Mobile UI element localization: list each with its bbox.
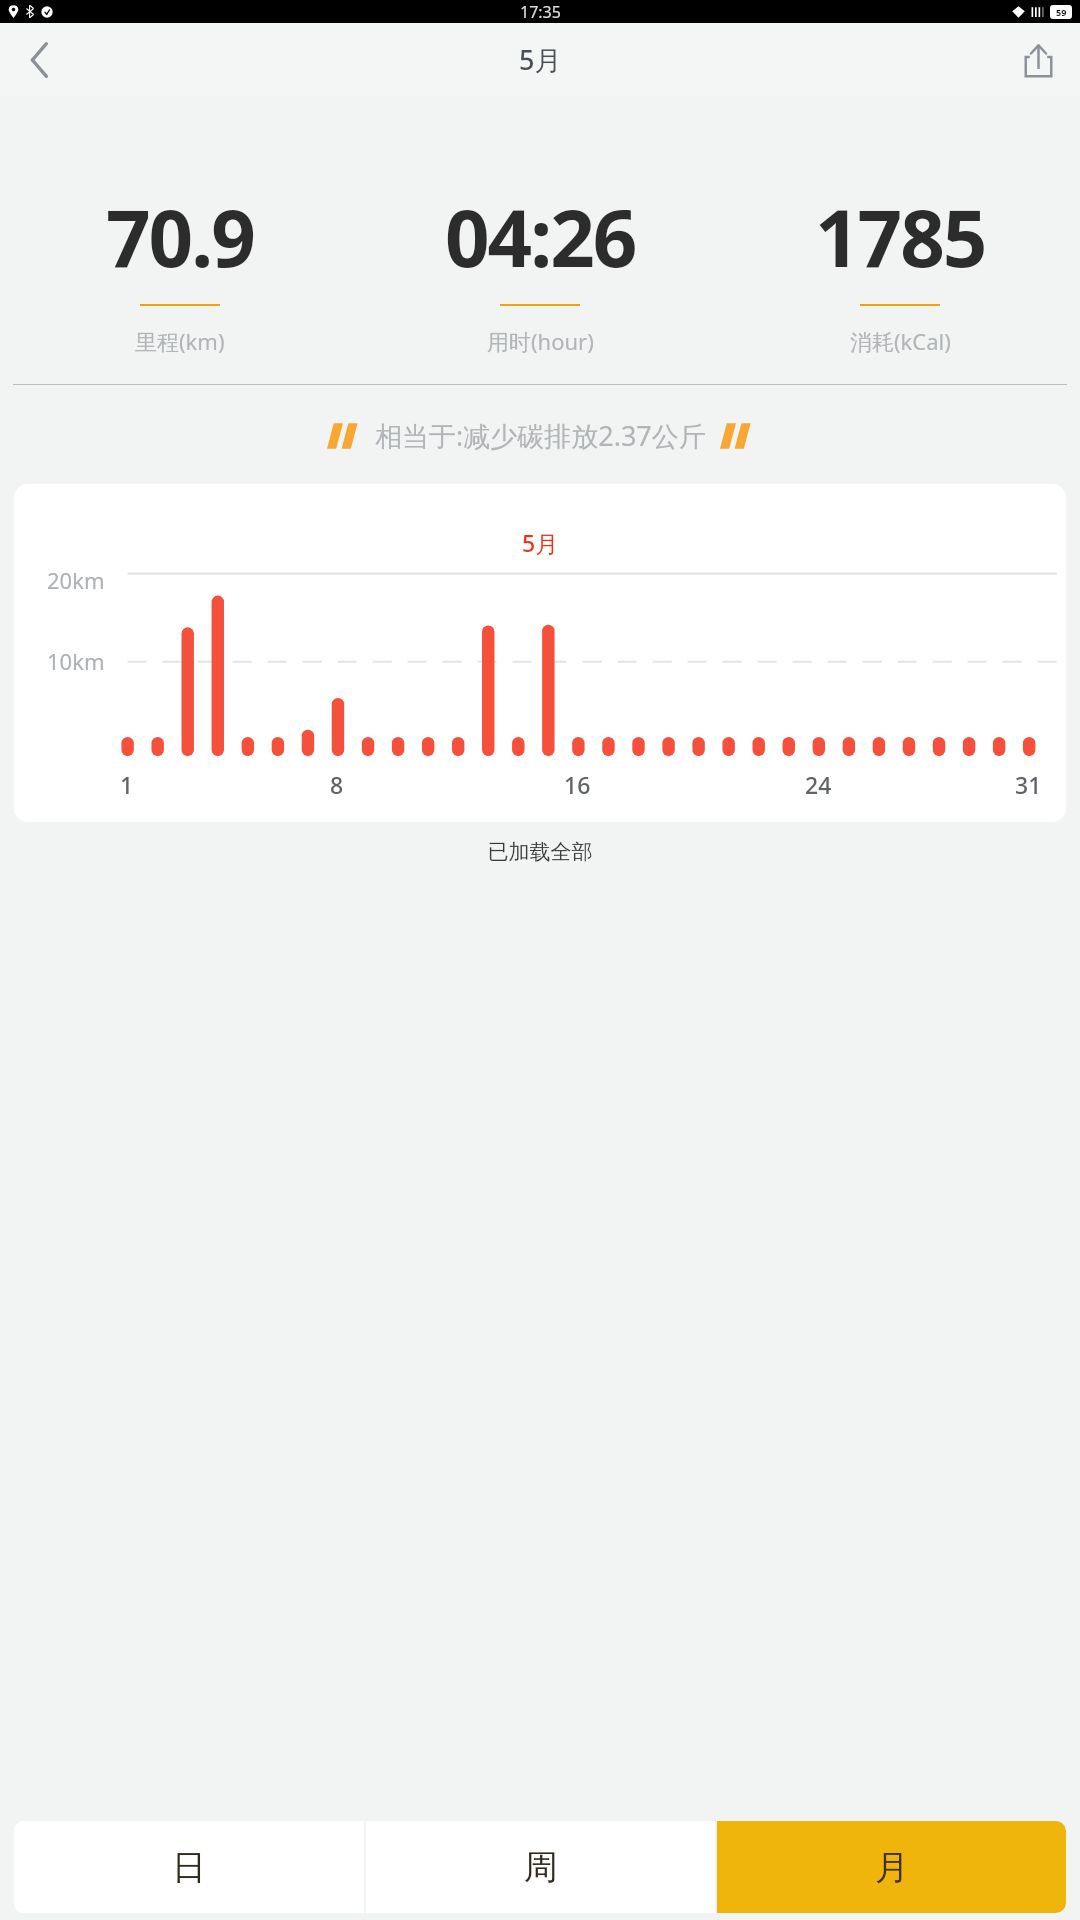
button[interactable]: Share <box>1010 32 1066 88</box>
staticText: 5月 <box>519 41 562 78</box>
button[interactable]: Back <box>12 32 68 88</box>
staticText: 10km <box>47 646 105 676</box>
staticText: 24 <box>805 769 832 800</box>
staticText: 16 <box>564 769 591 800</box>
staticText: 消耗(kCal) <box>850 326 951 356</box>
staticText: 17:35 <box>520 1 561 23</box>
button[interactable]: 5月 <box>14 484 1066 822</box>
staticText: 20km <box>47 565 105 595</box>
staticText: 5月 <box>522 527 559 558</box>
button[interactable]: 日 <box>14 1821 364 1913</box>
staticText: 相当于:减少碳排放2.37公斤 <box>375 417 706 454</box>
staticText: 59 <box>1056 6 1067 18</box>
button[interactable]: 1785 <box>720 184 1080 356</box>
staticText: 周 <box>524 1846 558 1889</box>
staticText: 日 <box>172 1846 206 1889</box>
staticText: 70.9 <box>106 184 254 290</box>
staticText: 1 <box>120 769 134 800</box>
button[interactable]: 月 <box>717 1821 1066 1913</box>
staticText: 8 <box>330 769 344 800</box>
button[interactable]: 04:26 <box>360 184 720 356</box>
staticText: 1785 <box>815 184 986 290</box>
button[interactable]: 周 <box>366 1821 715 1913</box>
staticText: 用时(hour) <box>487 326 594 356</box>
staticText: 里程(km) <box>135 326 225 356</box>
staticText: 31 <box>1015 769 1042 800</box>
button[interactable]: 70.9 <box>0 184 360 356</box>
staticText: 04:26 <box>445 184 636 290</box>
staticText: 月 <box>875 1846 909 1889</box>
staticText: 已加载全部 <box>0 839 1080 865</box>
